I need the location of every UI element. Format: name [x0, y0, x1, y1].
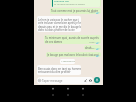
staticText: tu te laisse pousser la plante: [54, 3, 85, 6]
staticText: Je bouge pas mal avec le boulot c'est vr…: [47, 53, 99, 57]
button[interactable]: Charlotte Lille: [51, 0, 101, 7]
staticText: depuis peu et je me dis le bouge bo: [38, 25, 81, 29]
button[interactable]: Je bouge pas mal avec le boulot c'est vr…: [46, 52, 101, 57]
button[interactable]: Tu minimum quoi, aurais de sucrée auprés: [44, 35, 101, 44]
button[interactable]: Ben ouais donc en tant qu homme voila: [37, 65, 81, 75]
staticText: Tu minimum quoi, aurais de sucrée auprés: [45, 36, 99, 40]
staticText: 12:06: [89, 47, 95, 50]
staticText: donc tu dois profiter de la vie: [38, 28, 75, 32]
staticText: entourant du dire profiter: [38, 70, 71, 74]
staticText: Charlotte Lille: [54, 0, 69, 3]
button[interactable]: Emoji: [37, 77, 93, 84]
staticText: Le hen je vais pas le cacher que j: [38, 18, 79, 22]
button[interactable]: Back: [48, 85, 58, 99]
other: Camera: [89, 79, 92, 82]
button[interactable]: 1 MESSAGE NON LU: [60, 59, 75, 64]
button[interactable]: Voice message: [94, 77, 100, 83]
button[interactable]: Home: [63, 85, 73, 99]
other: Emoji: [38, 79, 41, 82]
staticText: Tout comme moi je pourrais lui plaire: [51, 9, 99, 13]
button[interactable]: ahah: [84, 45, 101, 50]
staticText: de ces dames: [45, 40, 63, 44]
staticText: crée trouver came bien aprés je te: [38, 21, 81, 25]
button[interactable]: Recents: [78, 85, 88, 99]
other: Attach: [84, 79, 87, 82]
staticText: 12:04: [89, 11, 95, 14]
staticText: ahah: [85, 46, 92, 50]
button[interactable]: Le hen je vais pas le cacher que j: [37, 16, 81, 32]
staticText: Ben ouais donc en tant qu homme voila: [38, 67, 81, 71]
staticText: 12:06: [89, 41, 95, 44]
staticText: 12:07: [89, 54, 95, 57]
staticText: Taper message: [42, 79, 63, 83]
button[interactable]: Tout comme moi je pourrais lui plaire: [50, 8, 101, 14]
staticText: 1 MESSAGE NON LU: [61, 60, 75, 63]
